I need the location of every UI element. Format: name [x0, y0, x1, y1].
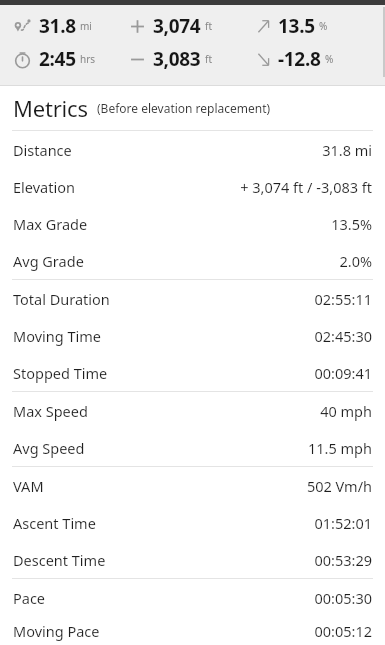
staticText: %	[325, 52, 334, 66]
staticText: Metrics	[13, 93, 88, 123]
staticText: 00:53:29	[314, 550, 372, 570]
staticText: 00:09:41	[314, 363, 372, 383]
staticText: Distance	[13, 140, 72, 160]
staticText: 40 mph	[320, 401, 372, 421]
staticText: Max Grade	[13, 214, 88, 234]
staticText: Avg Speed	[13, 438, 85, 458]
staticText: VAM	[13, 476, 44, 496]
staticText: Descent Time	[13, 550, 106, 570]
staticText: 3,074	[153, 13, 201, 39]
staticText: Elevation	[13, 177, 75, 197]
staticText: + 3,074 ft / -3,083 ft	[240, 177, 372, 197]
staticText: Moving Pace	[13, 621, 100, 641]
button[interactable]: Ascent Time	[0, 504, 385, 541]
staticText: Total Duration	[13, 289, 110, 309]
staticText: 01:52:01	[314, 513, 372, 533]
staticText: Ascent Time	[13, 513, 96, 533]
button[interactable]: Descent Time	[0, 541, 385, 578]
staticText: 2.0%	[339, 251, 372, 271]
staticText: 13.5%	[331, 214, 372, 234]
button[interactable]: Elevation	[0, 168, 385, 205]
staticText: ft	[205, 19, 213, 33]
staticText: 2:45	[39, 46, 76, 72]
button[interactable]: Moving Time	[0, 317, 385, 354]
button[interactable]: Pace	[0, 579, 385, 616]
button[interactable]: Distance	[0, 131, 385, 168]
button[interactable]: Max Speed	[0, 392, 385, 429]
staticText: hrs	[80, 52, 96, 66]
staticText: Moving Time	[13, 326, 101, 346]
staticText: 11.5 mph	[308, 438, 372, 458]
staticText: 00:05:12	[314, 621, 372, 641]
staticText: 02:55:11	[314, 289, 372, 309]
staticText: 3,083	[153, 46, 201, 72]
staticText: mi	[80, 19, 92, 33]
button[interactable]: VAM	[0, 467, 385, 504]
staticText: (Before elevation replacement)	[97, 100, 271, 116]
staticText: 02:45:30	[314, 326, 372, 346]
button[interactable]: Avg Speed	[0, 429, 385, 466]
staticText: 31.8	[39, 13, 76, 39]
staticText: Max Speed	[13, 401, 88, 421]
button[interactable]: Total Duration	[0, 280, 385, 317]
button[interactable]: Max Grade	[0, 205, 385, 242]
staticText: 502 Vm/h	[306, 476, 372, 496]
staticText: 13.5	[278, 13, 315, 39]
staticText: ft	[205, 52, 213, 66]
staticText: 00:05:30	[314, 588, 372, 608]
staticText: Pace	[13, 588, 46, 608]
staticText: 31.8 mi	[322, 140, 372, 160]
staticText: -12.8	[278, 46, 321, 72]
staticText: Stopped Time	[13, 363, 108, 383]
button[interactable]: Stopped Time	[0, 354, 385, 391]
button[interactable]: Moving Pace	[0, 616, 385, 645]
button[interactable]: Avg Grade	[0, 242, 385, 279]
staticText: Avg Grade	[13, 251, 84, 271]
staticText: %	[319, 19, 328, 33]
